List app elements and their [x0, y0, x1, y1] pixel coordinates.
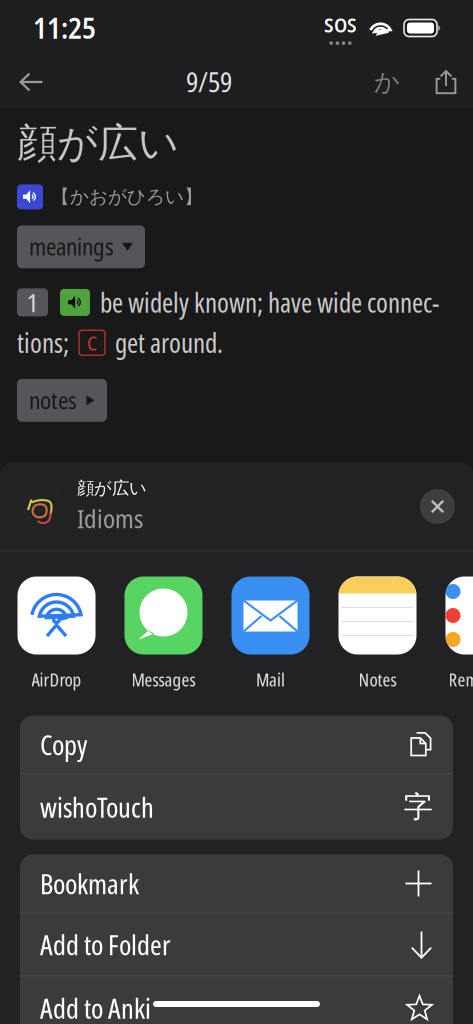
button[interactable]: AirDrop [3, 576, 110, 692]
staticText: get around. [115, 325, 223, 361]
button[interactable]: Add to Folder [20, 913, 453, 976]
staticText: Notes [358, 666, 396, 692]
button[interactable]: Messages [110, 576, 217, 692]
button[interactable]: Notes [324, 576, 431, 692]
button[interactable]: wishoTouch [20, 774, 453, 839]
staticText: Copy [40, 725, 87, 763]
button[interactable]: Copy [20, 715, 453, 774]
staticText: tions; [17, 325, 69, 361]
staticText: AirDrop [31, 666, 81, 692]
button[interactable]: Close [420, 489, 455, 524]
staticText: Bookmark [40, 864, 139, 902]
button[interactable]: Back [13, 63, 50, 100]
staticText: Add to Folder [40, 925, 171, 963]
staticText: 1 [26, 285, 38, 320]
button[interactable]: Kana [368, 62, 406, 102]
staticText: be widely known; have wide connec- [100, 284, 439, 321]
staticText: notes [29, 385, 77, 416]
staticText: SOS [324, 11, 357, 38]
staticText: 字 [403, 788, 432, 825]
staticText: 顔が広い [77, 477, 147, 499]
staticText: か [374, 66, 400, 98]
button[interactable]: Mail [217, 576, 324, 692]
staticText: wishoTouch [40, 788, 154, 826]
button[interactable]: Play meaning [60, 289, 90, 316]
staticText: C [87, 329, 97, 356]
button[interactable]: Bookmark [20, 854, 453, 913]
staticText: Idioms [77, 501, 143, 536]
staticText: 11:25 [33, 9, 96, 47]
staticText: meanings [29, 231, 114, 262]
staticText: Messages [131, 666, 195, 692]
staticText: Add to Anki [40, 989, 151, 1024]
staticText: Mail [256, 666, 285, 692]
button[interactable]: meanings [17, 225, 145, 268]
staticText: 顔が広い [17, 118, 179, 168]
staticText: 【かおがひろい】 [51, 185, 203, 209]
staticText: 9/59 [186, 64, 232, 100]
button[interactable]: Play reading [17, 184, 43, 209]
button[interactable]: notes [17, 379, 107, 422]
button[interactable]: Add to Anki [20, 976, 453, 1024]
staticText: Reminders [448, 666, 473, 692]
button[interactable]: Share [432, 69, 460, 95]
button[interactable]: Reminders [431, 576, 473, 692]
